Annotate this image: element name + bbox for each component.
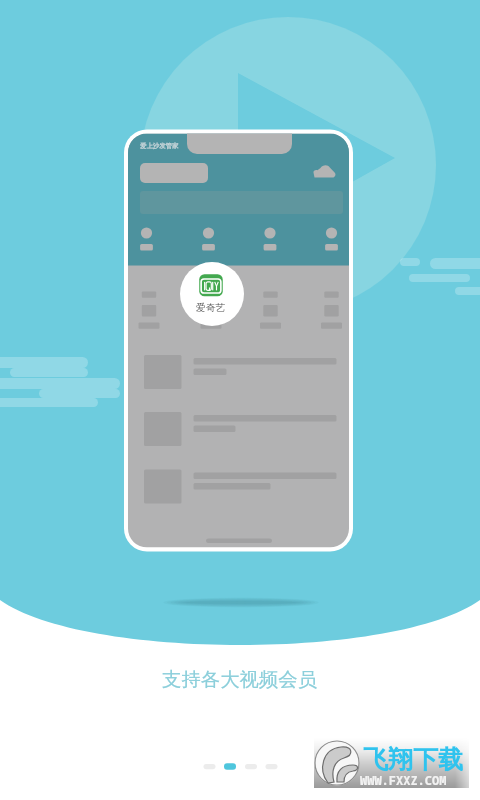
button[interactable]: iQIYI app bbox=[180, 262, 244, 326]
button[interactable]: Page indicator bbox=[198, 756, 278, 772]
